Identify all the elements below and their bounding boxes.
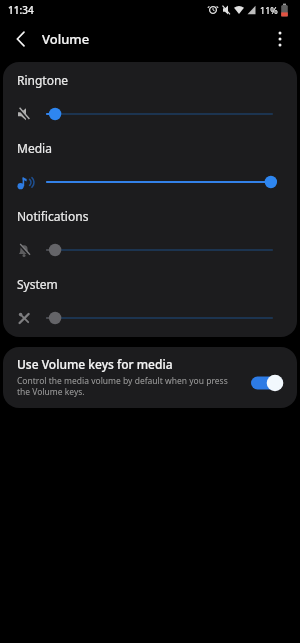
button[interactable]: Ringtone <box>3 62 297 130</box>
staticText: Control the media volume by default when… <box>17 375 239 397</box>
button[interactable] <box>251 372 287 394</box>
staticText: Ringtone <box>17 72 69 88</box>
staticText: Volume <box>42 30 90 48</box>
staticText: 11% <box>260 4 278 16</box>
button[interactable]: Media <box>3 130 297 198</box>
staticText: Notifications <box>17 208 89 224</box>
button[interactable] <box>0 20 42 58</box>
button[interactable] <box>260 20 300 58</box>
button[interactable]: Use Volume keys for media <box>3 347 297 408</box>
button[interactable]: System <box>3 266 297 334</box>
button[interactable]: Notifications <box>3 198 297 266</box>
staticText: Use Volume keys for media <box>17 356 173 372</box>
staticText: 11:34 <box>8 3 34 17</box>
staticText: Media <box>17 140 52 156</box>
staticText: System <box>17 276 58 292</box>
